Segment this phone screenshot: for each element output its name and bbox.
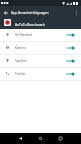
button[interactable]: Back (10, 133, 30, 144)
button[interactable]: More options (72, 6, 81, 19)
button[interactable]: Speicher (0, 55, 81, 68)
staticText: Kamera (15, 46, 26, 50)
button[interactable]: Ihr Standort (0, 29, 81, 42)
button[interactable]: Kamera (0, 42, 81, 55)
staticText: Ihr Standort (15, 33, 33, 37)
button[interactable]: Telefon (0, 68, 81, 81)
button[interactable]: Recent apps (50, 133, 70, 144)
staticText: App-Benachrichtigungen (11, 11, 49, 15)
staticText: Telefon (15, 72, 26, 76)
button[interactable]: AnTuTu Benchmark (0, 19, 81, 29)
staticText: Speicher (15, 59, 28, 63)
button[interactable]: Home (30, 133, 50, 144)
staticText: AnTuTu Benchmark (15, 23, 45, 27)
button[interactable]: Back (0, 6, 12, 19)
